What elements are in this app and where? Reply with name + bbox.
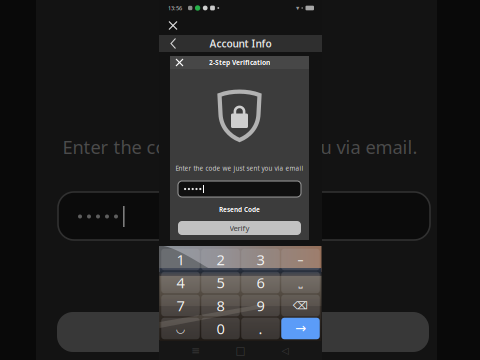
- button[interactable]: 4: [161, 272, 200, 293]
- button[interactable]: 2: [201, 249, 240, 270]
- staticText: ◁: [282, 345, 289, 356]
- staticText: –: [297, 251, 303, 267]
- staticText: 9: [256, 296, 264, 315]
- staticText: 3: [256, 250, 264, 269]
- button[interactable]: 8: [201, 295, 240, 316]
- staticText: Account Info: [209, 37, 271, 50]
- staticText: ⌫: [293, 299, 308, 311]
- staticText: 2: [216, 250, 224, 269]
- staticText: 2-Step Verification: [209, 58, 270, 67]
- button[interactable]: Recents: [188, 343, 204, 357]
- staticText: 1: [176, 250, 184, 269]
- staticText: □: [235, 344, 245, 357]
- staticText: →: [295, 321, 306, 336]
- staticText: ⎵: [298, 277, 302, 288]
- button[interactable]: ⌫: [281, 295, 320, 316]
- button[interactable]: 7: [161, 295, 200, 316]
- staticText: ◡: [176, 322, 185, 334]
- button[interactable]: Back: [168, 35, 180, 52]
- button[interactable]: Resend Code: [170, 205, 309, 214]
- staticText: 8: [216, 296, 224, 315]
- button[interactable]: 3: [241, 249, 280, 270]
- button[interactable]: Back: [277, 343, 293, 357]
- button[interactable]: ⎵: [281, 272, 320, 293]
- staticText: 6: [256, 273, 264, 292]
- button[interactable]: .: [241, 318, 280, 339]
- staticText: .: [258, 319, 262, 338]
- staticText: 0: [216, 319, 224, 338]
- button[interactable]: Verify: [178, 221, 301, 235]
- staticText: Enter the code we just sent you via emai…: [175, 164, 303, 172]
- staticText: ≡: [191, 344, 200, 357]
- button[interactable]: 0: [201, 318, 240, 339]
- staticText: Verify: [229, 223, 249, 233]
- staticText: ▾: [296, 4, 299, 12]
- staticText: Resend Code: [219, 205, 260, 214]
- button[interactable]: 9: [241, 295, 280, 316]
- staticText: 7: [176, 296, 184, 315]
- button[interactable]: 5: [201, 272, 240, 293]
- staticText: 5: [216, 273, 224, 292]
- button[interactable]: 1: [161, 249, 200, 270]
- button[interactable]: 6: [241, 272, 280, 293]
- button[interactable]: –: [281, 249, 320, 270]
- staticText: Enter the code we just sent you via emai…: [62, 135, 417, 159]
- button[interactable]: Close: [173, 56, 186, 69]
- staticText: 4: [176, 273, 184, 292]
- staticText: 13:56: [168, 4, 182, 12]
- button[interactable]: Enter: [281, 318, 320, 339]
- button[interactable]: Close: [165, 16, 181, 35]
- button[interactable]: Home: [232, 343, 248, 357]
- button[interactable]: ◡: [161, 318, 200, 339]
